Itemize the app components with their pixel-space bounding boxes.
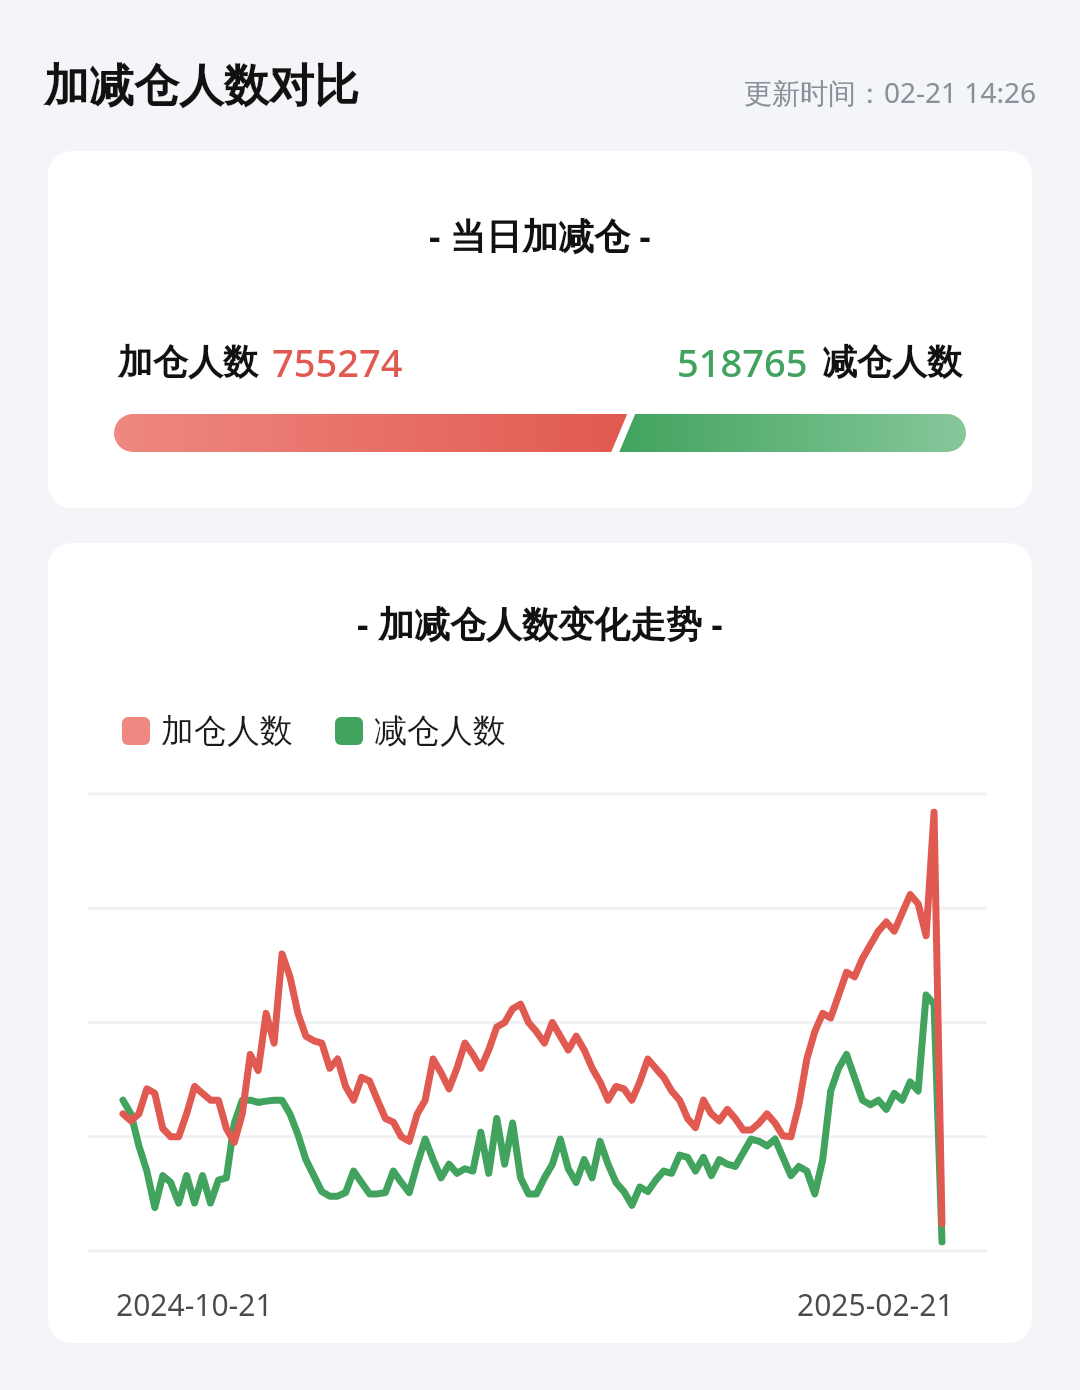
staticText: 加减仓人数对比	[44, 58, 359, 115]
staticText: 更新时间：02-21 14:26	[744, 73, 1036, 111]
staticText: 加仓人数	[118, 340, 258, 384]
staticText: 减仓人数	[374, 710, 506, 752]
staticText: 2024-10-21	[116, 1284, 273, 1325]
staticText: 518765	[677, 336, 808, 388]
button[interactable]: - 加减仓人数变化走势 -	[48, 543, 1032, 1343]
staticText: - 加减仓人数变化走势 -	[48, 599, 1032, 648]
staticText: 加仓人数	[161, 710, 293, 752]
button[interactable]: - 当日加减仓 -	[48, 151, 1032, 508]
staticText: 减仓人数	[822, 340, 962, 384]
staticText: - 当日加减仓 -	[48, 211, 1032, 260]
staticText: 755274	[272, 336, 403, 388]
staticText: 2025-02-21	[797, 1284, 954, 1325]
